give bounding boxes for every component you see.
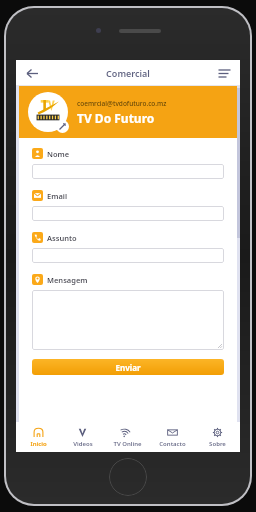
staticText: Inicio bbox=[30, 440, 47, 448]
button[interactable]: Text input bbox=[32, 164, 224, 179]
button[interactable]: Message input bbox=[32, 290, 224, 350]
staticText: Nome bbox=[47, 149, 70, 159]
button[interactable]: Text input bbox=[32, 248, 224, 263]
button[interactable]: Sobre bbox=[195, 422, 240, 452]
staticText: TV Do Futuro bbox=[77, 110, 155, 126]
button[interactable]: Inicio bbox=[16, 422, 60, 452]
staticText: TV Online bbox=[113, 440, 142, 448]
button[interactable]: TV Online bbox=[105, 422, 150, 452]
staticText: Comercial bbox=[106, 67, 150, 79]
staticText: Contacto bbox=[159, 440, 186, 448]
button[interactable]: Contacto bbox=[150, 422, 195, 452]
staticText: Enviar bbox=[115, 362, 141, 373]
staticText: Sobre bbox=[209, 440, 226, 448]
staticText: Mensagem bbox=[47, 275, 88, 285]
button[interactable]: Videos bbox=[60, 422, 105, 452]
staticText: Email bbox=[47, 191, 68, 201]
button[interactable]: Back bbox=[22, 63, 42, 83]
button[interactable]: Enviar bbox=[32, 359, 224, 375]
staticText: Assunto bbox=[47, 233, 77, 243]
button[interactable]: Edit profile photo bbox=[27, 91, 69, 133]
staticText: Videos bbox=[73, 440, 93, 448]
button[interactable]: Text input bbox=[32, 206, 224, 221]
button[interactable]: Menu bbox=[214, 63, 234, 83]
staticText: coemrcial@tvdofuturo.co.mz bbox=[77, 99, 167, 108]
